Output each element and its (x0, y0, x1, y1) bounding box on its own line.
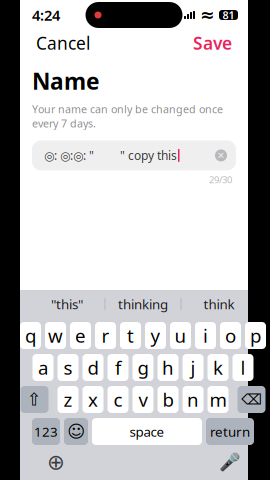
button[interactable]: Next keyboard (41, 448, 71, 476)
staticText: y (150, 323, 160, 348)
staticText: " copy this (120, 147, 177, 163)
button[interactable]: u (170, 322, 191, 349)
staticText: "this" (51, 295, 83, 313)
button[interactable]: c (107, 386, 128, 413)
staticText: ⇧ (27, 390, 42, 409)
staticText: j (190, 355, 195, 380)
staticText: t (127, 323, 134, 348)
button[interactable]: Save (183, 25, 242, 60)
staticText: p (250, 323, 261, 348)
staticText: 🎤 (219, 452, 241, 472)
staticText: c (113, 387, 122, 412)
button[interactable]: thinking (105, 291, 180, 317)
button[interactable]: Emoji keyboard (64, 418, 88, 445)
staticText: r (101, 323, 109, 348)
staticText: ◎: ◎:◎: " (44, 147, 94, 163)
button[interactable]: Delete (237, 386, 265, 413)
staticText: return (210, 423, 250, 440)
staticText: Name (32, 66, 100, 96)
staticText: Cancel (36, 31, 90, 54)
staticText: think (203, 295, 234, 313)
staticText: i (203, 323, 208, 348)
button[interactable]: b (157, 386, 178, 413)
button[interactable]: i (195, 322, 216, 349)
staticText: d (87, 355, 98, 380)
staticText: o (225, 323, 236, 348)
staticText: b (162, 387, 173, 412)
button[interactable]: a (32, 354, 53, 381)
button[interactable]: x (82, 386, 103, 413)
button[interactable]: y (145, 322, 166, 349)
button[interactable]: q (20, 322, 41, 349)
staticText: ☺ (67, 422, 85, 441)
button[interactable]: o (220, 322, 241, 349)
staticText: u (174, 323, 186, 348)
staticText: Your name can only be changed once every… (32, 102, 223, 130)
button[interactable]: "this" (29, 291, 104, 317)
staticText: 29/30 (209, 173, 232, 186)
staticText: w (48, 323, 63, 348)
staticText: l (240, 355, 245, 380)
button[interactable]: Clear text (210, 144, 232, 166)
button[interactable]: p (245, 322, 266, 349)
staticText: ⌫ (241, 391, 262, 408)
staticText: g (137, 355, 148, 380)
button[interactable]: s (57, 354, 78, 381)
staticText: k (213, 355, 223, 380)
button[interactable]: r (95, 322, 116, 349)
button[interactable]: return (206, 418, 254, 445)
staticText: 81 (222, 8, 234, 22)
button[interactable]: think (181, 291, 256, 317)
staticText: s (63, 355, 72, 380)
button[interactable]: l (232, 354, 253, 381)
button[interactable]: 123 (32, 418, 60, 445)
staticText: space (129, 423, 164, 440)
button[interactable]: Dictation (215, 448, 245, 476)
staticText: v (138, 387, 147, 412)
button[interactable]: j (182, 354, 203, 381)
staticText: thinking (118, 295, 168, 313)
staticText: q (25, 323, 36, 348)
staticText: x (88, 387, 98, 412)
button[interactable]: k (207, 354, 228, 381)
staticText: z (63, 387, 72, 412)
staticText: 123 (34, 423, 58, 440)
staticText: ⊕ (47, 450, 65, 474)
button[interactable]: Shift (20, 386, 48, 413)
staticText: f (115, 355, 121, 380)
button[interactable]: f (107, 354, 128, 381)
button[interactable]: e (70, 322, 91, 349)
button[interactable]: t (120, 322, 141, 349)
button[interactable]: z (57, 386, 78, 413)
button[interactable]: n (182, 386, 203, 413)
staticText: n (187, 387, 199, 412)
staticText: ✕ (217, 150, 225, 161)
button[interactable]: v (132, 386, 153, 413)
staticText: e (75, 323, 86, 348)
staticText: 4:24 (32, 5, 60, 25)
staticText: h (162, 355, 174, 380)
button[interactable]: w (45, 322, 66, 349)
button[interactable]: space (92, 418, 202, 445)
button[interactable]: d (82, 354, 103, 381)
button[interactable]: g (132, 354, 153, 381)
button[interactable]: h (157, 354, 178, 381)
button[interactable]: Cancel (26, 25, 100, 60)
staticText: a (38, 355, 48, 380)
staticText: Save (193, 31, 232, 54)
staticText: m (209, 387, 226, 412)
staticText: ≈ (200, 5, 215, 25)
button[interactable]: m (207, 386, 228, 413)
